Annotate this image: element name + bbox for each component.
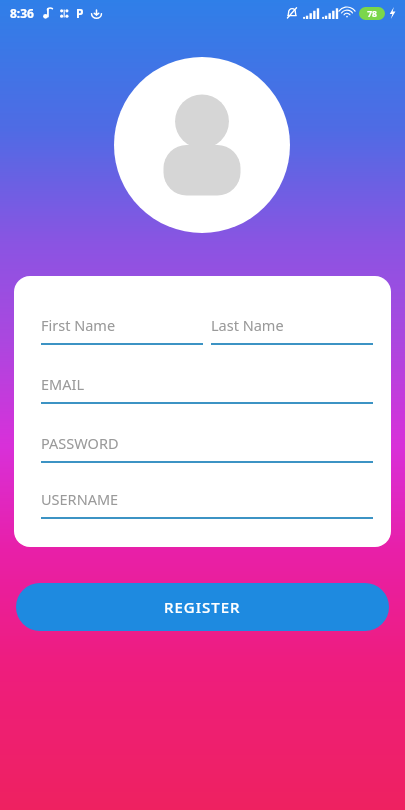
button[interactable]: REGISTER [16,583,389,631]
staticText: PASSWORD [41,433,119,453]
button[interactable]: Last Name [211,315,373,345]
staticText: Last Name [211,315,284,335]
button[interactable]: PASSWORD [41,433,373,463]
staticText: REGISTER [164,597,241,617]
staticText: 78 [367,8,377,20]
button[interactable]: USERNAME [41,489,373,519]
staticText: 8:36 [10,5,34,21]
staticText: First Name [41,315,116,335]
staticText: EMAIL [41,374,84,394]
staticText: P [76,5,84,21]
button[interactable]: First Name [41,315,203,345]
staticText: USERNAME [41,489,119,509]
button[interactable]: EMAIL [41,374,373,404]
